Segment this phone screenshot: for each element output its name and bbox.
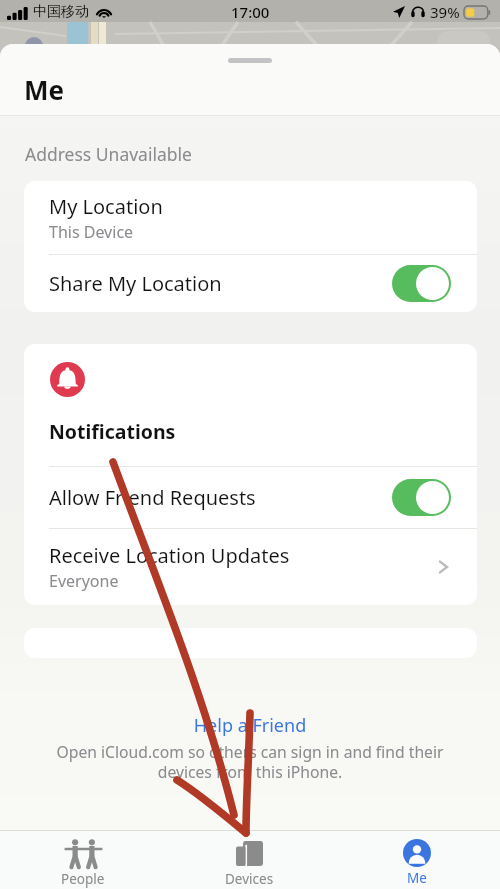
staticText: 39% xyxy=(430,2,460,22)
staticText: Me xyxy=(407,869,427,887)
button[interactable]: Toggle on xyxy=(392,479,451,516)
button[interactable]: Toggle on xyxy=(392,265,451,302)
staticText: Share My Location xyxy=(49,270,222,297)
button[interactable]: Share My Location xyxy=(24,255,477,312)
staticText: My Location xyxy=(49,193,163,220)
button[interactable]: People xyxy=(0,831,166,889)
button[interactable]: Receive Location Updates xyxy=(24,529,477,605)
button[interactable]: Devices xyxy=(166,831,333,889)
staticText: 17:00 xyxy=(231,2,270,22)
staticText: Notifications xyxy=(49,418,176,445)
button[interactable]: Me xyxy=(333,831,500,889)
staticText: This Device xyxy=(49,221,134,243)
button[interactable]: Allow Friend Requests xyxy=(24,467,477,528)
button[interactable] xyxy=(24,628,477,658)
staticText: Me xyxy=(24,72,65,107)
staticText: People xyxy=(61,870,105,888)
staticText: Allow Friend Requests xyxy=(49,484,256,511)
button[interactable]: My Location xyxy=(24,181,477,254)
staticText: Address Unavailable xyxy=(25,142,192,166)
button[interactable]: Help a Friend xyxy=(0,713,500,738)
staticText: Receive Location Updates xyxy=(49,542,290,569)
staticText: Devices xyxy=(225,870,274,888)
staticText: Everyone xyxy=(49,570,119,592)
staticText: 中国移动 xyxy=(33,3,89,21)
staticText: Open iCloud.com so others can sign in an… xyxy=(44,741,456,783)
